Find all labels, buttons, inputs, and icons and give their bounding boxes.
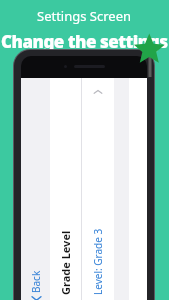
staticText: Grade Level xyxy=(58,230,73,295)
staticText: Back xyxy=(29,270,43,293)
staticText: Change the settings xyxy=(1,30,168,53)
staticText: Settings Screen xyxy=(37,7,132,25)
button[interactable]: Back xyxy=(27,268,45,300)
button[interactable]: Level: Grade 3 xyxy=(82,78,114,300)
other: Featured star xyxy=(132,35,168,77)
staticText: Level: Grade 3 xyxy=(91,228,105,295)
